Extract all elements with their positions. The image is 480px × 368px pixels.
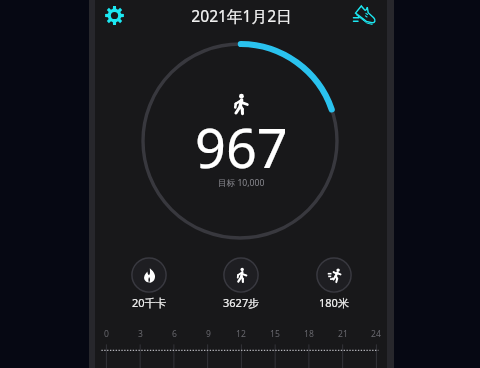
button[interactable]: Distance (299, 257, 369, 310)
staticText: 3 (138, 328, 143, 340)
button[interactable]: Running activity (350, 0, 378, 28)
staticText: 18 (304, 328, 314, 340)
staticText: 6 (172, 328, 177, 340)
staticText: 967 (195, 110, 288, 184)
button[interactable]: Settings (100, 1, 128, 29)
staticText: 180米 (319, 295, 349, 310)
staticText: 21 (338, 328, 348, 340)
staticText: 24 (371, 328, 381, 340)
staticText: 目标 10,000 (218, 177, 265, 189)
staticText: 20千卡 (132, 295, 167, 310)
staticText: 12 (236, 328, 246, 340)
staticText: 3627步 (223, 295, 260, 310)
staticText: 2021年1月2日 (191, 5, 292, 26)
staticText: 15 (270, 328, 280, 340)
button[interactable]: Steps (206, 257, 276, 310)
staticText: 0 (104, 328, 109, 340)
staticText: 9 (206, 328, 211, 340)
button[interactable]: Calories (114, 257, 184, 310)
